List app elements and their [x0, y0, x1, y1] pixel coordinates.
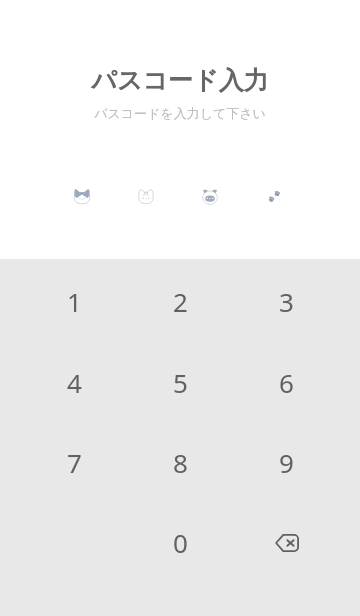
- staticText: 6: [279, 365, 294, 400]
- button[interactable]: 6: [246, 354, 326, 410]
- button[interactable]: 8: [140, 434, 220, 490]
- button[interactable]: 0: [140, 514, 220, 570]
- button[interactable]: Backspace: [247, 515, 327, 571]
- button[interactable]: 1: [34, 273, 114, 329]
- button[interactable]: 9: [246, 434, 326, 490]
- staticText: パスコードを入力して下さい: [94, 105, 266, 121]
- button[interactable]: 7: [34, 434, 114, 490]
- staticText: 2: [173, 284, 188, 319]
- staticText: 7: [67, 445, 82, 480]
- button[interactable]: 2: [140, 273, 220, 329]
- button[interactable]: Passcode digit 1: [66, 180, 98, 212]
- staticText: 8: [173, 445, 188, 480]
- button[interactable]: Passcode digit 4: [257, 180, 289, 212]
- button[interactable]: 4: [34, 354, 114, 410]
- staticText: 0: [173, 525, 188, 560]
- staticText: 1: [67, 284, 82, 319]
- staticText: 3: [279, 284, 294, 319]
- staticText: 5: [173, 365, 188, 400]
- button[interactable]: Passcode digit 3: [194, 181, 226, 213]
- staticText: パスコード入力: [91, 65, 269, 96]
- staticText: 9: [279, 445, 294, 480]
- button[interactable]: 3: [246, 273, 326, 329]
- button[interactable]: 5: [140, 354, 220, 410]
- button[interactable]: Passcode digit 2: [130, 180, 162, 212]
- staticText: 4: [67, 365, 82, 400]
